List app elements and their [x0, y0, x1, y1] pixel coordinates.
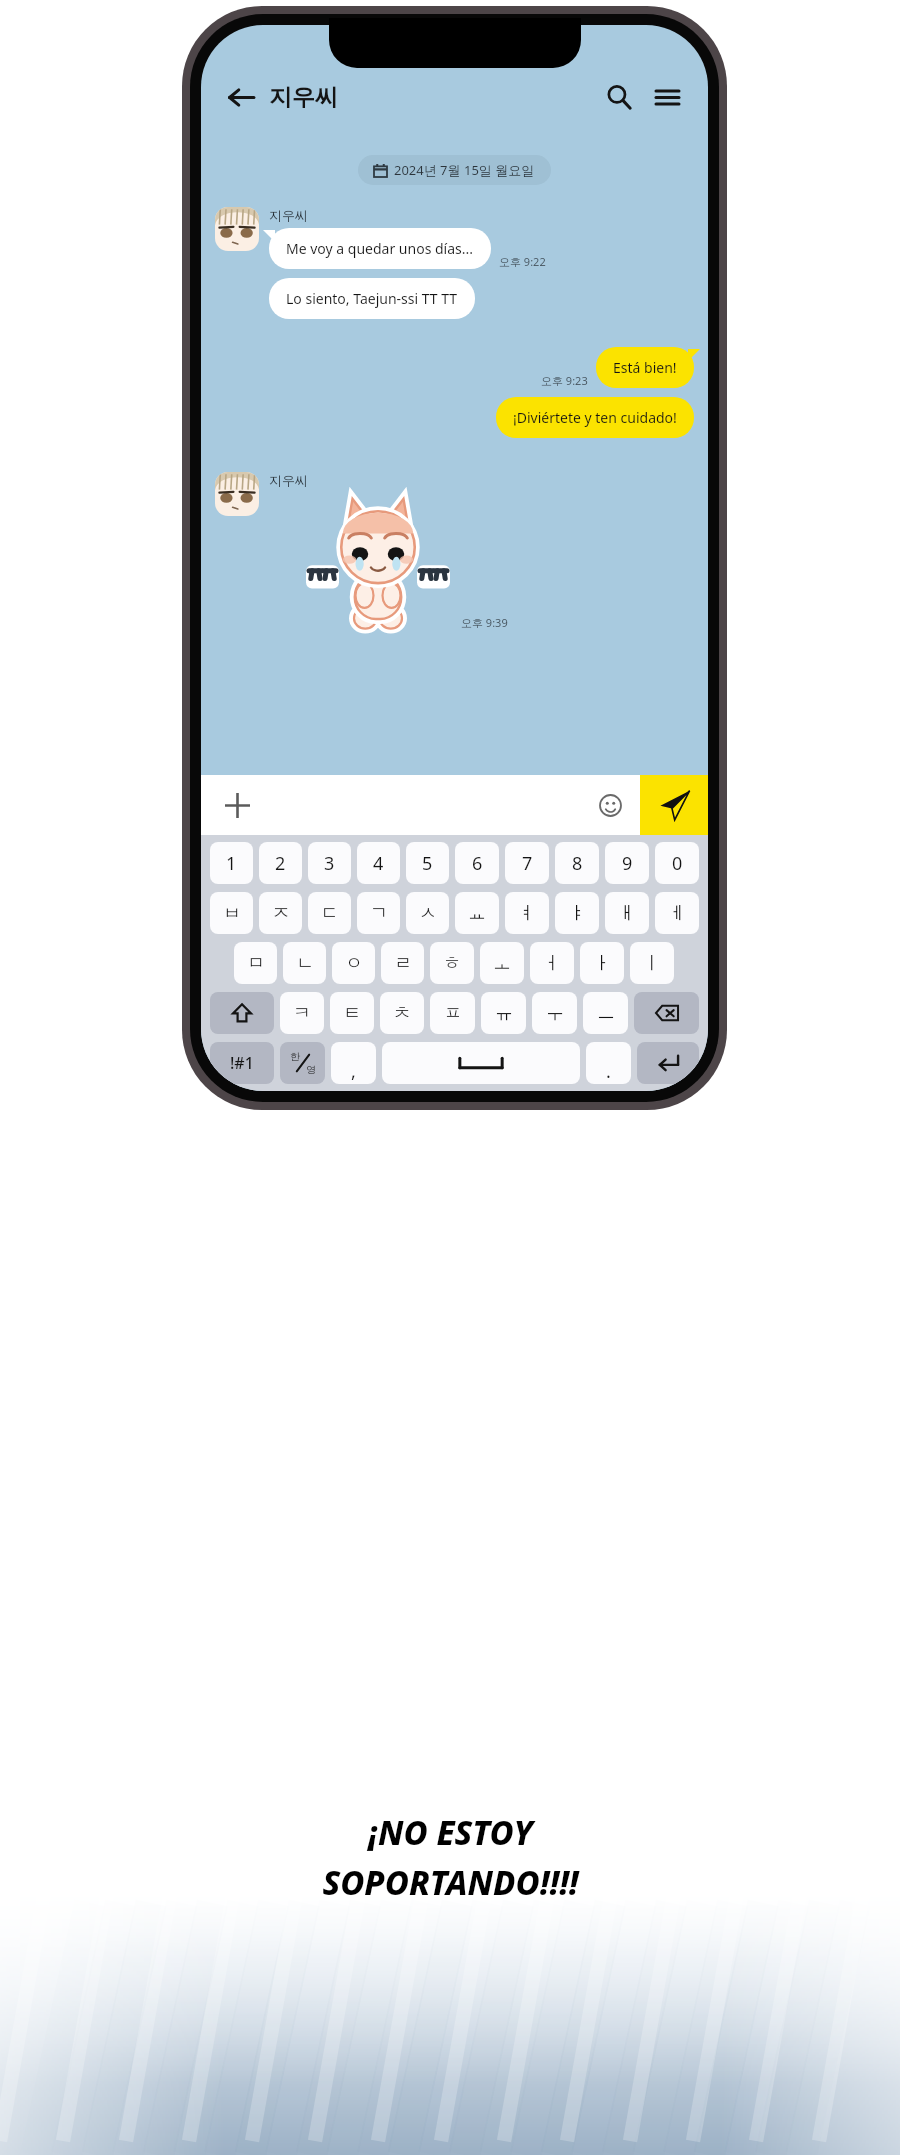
- button[interactable]: [382, 1042, 580, 1084]
- staticText: !#1: [230, 1052, 254, 1074]
- button[interactable]: Backspace: [634, 992, 699, 1034]
- staticText: 지우씨: [269, 207, 308, 223]
- button[interactable]: ㄴ: [283, 942, 326, 984]
- button[interactable]: Crying cat sticker: [303, 492, 453, 630]
- staticText: 3: [324, 851, 335, 876]
- button[interactable]: ㅇ: [332, 942, 375, 984]
- button[interactable]: ㅎ: [430, 942, 474, 984]
- button[interactable]: 4: [357, 842, 400, 884]
- button[interactable]: ㅛ: [455, 892, 499, 934]
- staticText: 오후 9:22: [499, 254, 546, 269]
- button[interactable]: Enter: [637, 1042, 699, 1084]
- staticText: ㅐ: [618, 902, 636, 925]
- button[interactable]: 2024년 7월 15일 월요일: [374, 161, 535, 179]
- button[interactable]: Search: [596, 74, 642, 120]
- button[interactable]: Está bien!: [596, 347, 694, 388]
- staticText: ,: [351, 1059, 356, 1084]
- staticText: ㅇ: [345, 952, 363, 975]
- staticText: ㅡ: [597, 1002, 615, 1025]
- staticText: ㄷ: [321, 902, 339, 925]
- button[interactable]: Me voy a quedar unos días...: [269, 228, 491, 269]
- button[interactable]: ㅓ: [530, 942, 574, 984]
- button[interactable]: ㅡ: [583, 992, 628, 1034]
- staticText: 오후 9:39: [461, 615, 508, 630]
- button[interactable]: ㅈ: [259, 892, 302, 934]
- button[interactable]: Profile picture: [215, 207, 259, 251]
- button[interactable]: Menu: [644, 74, 690, 120]
- button[interactable]: ㅌ: [330, 992, 374, 1034]
- button[interactable]: Language: [280, 1042, 325, 1084]
- button[interactable]: 0: [655, 842, 699, 884]
- staticText: ㅕ: [518, 902, 536, 925]
- staticText: 2024년 7월 15일 월요일: [394, 161, 535, 179]
- button[interactable]: 1: [210, 842, 253, 884]
- staticText: ㅎ: [443, 952, 461, 975]
- staticText: ㅣ: [643, 952, 661, 975]
- staticText: 한: [290, 1050, 300, 1063]
- staticText: Está bien!: [613, 358, 677, 377]
- button[interactable]: Shift: [210, 992, 274, 1034]
- staticText: ㅂ: [223, 902, 241, 925]
- staticText: ㅑ: [568, 902, 586, 925]
- button[interactable]: ㅕ: [505, 892, 549, 934]
- button[interactable]: ㅏ: [580, 942, 624, 984]
- button[interactable]: Symbols: [210, 1042, 274, 1084]
- staticText: 영: [306, 1063, 316, 1076]
- button[interactable]: ㅣ: [630, 942, 674, 984]
- staticText: ㅋ: [293, 1002, 311, 1025]
- button[interactable]: ㅊ: [380, 992, 424, 1034]
- button[interactable]: ㅍ: [430, 992, 475, 1034]
- button[interactable]: .: [586, 1042, 631, 1084]
- staticText: ㅊ: [393, 1002, 411, 1025]
- staticText: ㅏ: [593, 952, 611, 975]
- button[interactable]: ㅜ: [532, 992, 577, 1034]
- button[interactable]: ㅠ: [481, 992, 526, 1034]
- staticText: 1: [226, 851, 237, 876]
- button[interactable]: ㅅ: [406, 892, 449, 934]
- staticText: 지우씨: [269, 83, 338, 112]
- button[interactable]: ㅑ: [555, 892, 599, 934]
- button[interactable]: 5: [406, 842, 449, 884]
- button[interactable]: Emoji: [580, 775, 640, 835]
- staticText: 4: [373, 851, 384, 876]
- button[interactable]: ㄷ: [308, 892, 351, 934]
- staticText: 6: [472, 851, 483, 876]
- staticText: 7: [522, 851, 533, 876]
- staticText: ㄴ: [296, 952, 314, 975]
- staticText: ㄹ: [394, 952, 412, 975]
- button[interactable]: ㅔ: [655, 892, 699, 934]
- staticText: 지우씨: [269, 472, 308, 488]
- button[interactable]: ㄹ: [381, 942, 424, 984]
- button[interactable]: 7: [505, 842, 549, 884]
- button[interactable]: ㄱ: [357, 892, 400, 934]
- staticText: Lo siento, Taejun-ssi TT TT: [286, 289, 458, 308]
- button[interactable]: ㅂ: [210, 892, 253, 934]
- button[interactable]: Back: [219, 75, 263, 119]
- button[interactable]: 6: [455, 842, 499, 884]
- staticText: 2: [275, 851, 286, 876]
- button[interactable]: ㅗ: [480, 942, 524, 984]
- staticText: ㅁ: [247, 952, 265, 975]
- button[interactable]: Send: [640, 775, 708, 835]
- button[interactable]: ¡Diviértete y ten cuidado!: [496, 397, 694, 438]
- button[interactable]: ㅋ: [280, 992, 324, 1034]
- staticText: SOPORTANDO!!!!: [322, 1860, 579, 1905]
- button[interactable]: ㅐ: [605, 892, 649, 934]
- button[interactable]: Lo siento, Taejun-ssi TT TT: [269, 278, 475, 319]
- staticText: 8: [572, 851, 583, 876]
- button[interactable]: 2: [259, 842, 302, 884]
- button[interactable]: ,: [331, 1042, 376, 1084]
- button[interactable]: Add attachment: [201, 775, 273, 835]
- staticText: ㅍ: [444, 1002, 462, 1025]
- button[interactable]: ㅁ: [234, 942, 277, 984]
- staticText: ㅠ: [495, 1002, 513, 1025]
- button[interactable]: 3: [308, 842, 351, 884]
- staticText: ㅛ: [468, 902, 486, 925]
- button[interactable]: 8: [555, 842, 599, 884]
- staticText: ㅔ: [668, 902, 686, 925]
- staticText: ㅈ: [272, 902, 290, 925]
- staticText: 오후 9:23: [541, 373, 588, 388]
- button[interactable]: 9: [605, 842, 649, 884]
- button[interactable]: Profile picture: [215, 472, 259, 516]
- staticText: ㅗ: [493, 952, 511, 975]
